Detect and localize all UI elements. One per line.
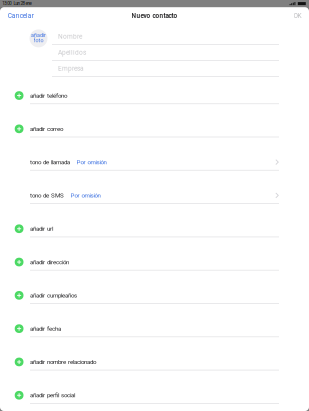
- staticText: Apellidos: [58, 49, 86, 56]
- staticText: Nombre: [58, 33, 82, 40]
- button[interactable]: añadir teléfono: [0, 77, 309, 110]
- staticText: tono de llamada: [30, 159, 70, 166]
- staticText: tono de SMS: [30, 192, 64, 199]
- staticText: Nuevo contacto: [131, 12, 177, 20]
- button[interactable]: añadir perfil social: [0, 376, 309, 410]
- button[interactable]: añadir fecha: [0, 310, 309, 343]
- button[interactable]: añadir cumpleaños: [0, 277, 309, 310]
- staticText: foto: [33, 37, 43, 43]
- button[interactable]: añadir correo: [0, 110, 309, 143]
- button[interactable]: añadir foto: [29, 29, 47, 47]
- staticText: añadir fecha: [30, 325, 61, 332]
- staticText: 13:00: [2, 1, 11, 6]
- staticText: Por omisión: [70, 192, 100, 199]
- staticText: añadir url: [30, 225, 53, 232]
- button[interactable]: añadir dirección: [0, 243, 309, 277]
- staticText: Por omisión: [76, 159, 106, 166]
- button[interactable]: Cancelar: [8, 12, 34, 20]
- staticText: añadir dirección: [30, 258, 69, 266]
- staticText: añadir cumpleaños: [30, 292, 77, 299]
- staticText: Lun 28 ene: [13, 1, 31, 6]
- staticText: añadir teléfono: [30, 92, 67, 99]
- button[interactable]: tono de SMS: [0, 177, 309, 210]
- staticText: OK: [293, 12, 301, 20]
- staticText: añadir: [31, 32, 46, 38]
- button[interactable]: añadir nombre relacionado: [0, 343, 309, 376]
- staticText: añadir nombre relacionado: [30, 358, 96, 366]
- staticText: Cancelar: [8, 12, 34, 20]
- staticText: añadir perfil social: [30, 392, 75, 399]
- staticText: añadir correo: [30, 125, 63, 132]
- button[interactable]: añadir url: [0, 210, 309, 243]
- button[interactable]: tono de llamada: [0, 143, 309, 177]
- button[interactable]: OK: [293, 12, 301, 20]
- staticText: Empresa: [58, 65, 84, 72]
